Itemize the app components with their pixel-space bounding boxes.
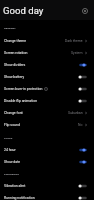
staticText: Good day bbox=[3, 5, 44, 16]
staticText: GENERAL bbox=[4, 27, 16, 30]
staticText: CLOCK bbox=[4, 137, 13, 140]
staticText: Show date bbox=[4, 160, 21, 164]
staticText: Dark theme bbox=[65, 39, 83, 43]
button[interactable]: 24 hour bbox=[0, 144, 94, 156]
staticText: Change theme bbox=[4, 39, 27, 43]
button[interactable]: On bbox=[78, 60, 88, 70]
button[interactable]: Off bbox=[78, 96, 88, 106]
button[interactable]: Change font bbox=[0, 107, 94, 119]
staticText: Show dividers bbox=[4, 63, 26, 67]
staticText: Suburban bbox=[68, 111, 83, 115]
button[interactable]: On bbox=[78, 145, 88, 155]
staticText: No bbox=[78, 123, 83, 127]
button[interactable]: Profile bbox=[79, 5, 90, 16]
button[interactable]: Off bbox=[78, 84, 88, 94]
button[interactable]: Off bbox=[78, 72, 88, 82]
button[interactable]: Screen rotation bbox=[0, 47, 94, 59]
staticText: 24 hour bbox=[4, 148, 16, 152]
staticText: Vibration alert bbox=[4, 184, 26, 188]
staticText: Running notification bbox=[4, 196, 35, 200]
button[interactable]: Change theme bbox=[0, 35, 94, 47]
button[interactable]: Off bbox=[78, 193, 88, 200]
button[interactable]: Disable flip animation bbox=[0, 95, 94, 107]
button[interactable]: Show battery bbox=[0, 71, 94, 83]
button[interactable]: Show dividers bbox=[0, 59, 94, 71]
staticText: POMODORO bbox=[4, 173, 20, 176]
button[interactable]: Flip sound bbox=[0, 119, 94, 131]
button[interactable]: Running notification bbox=[0, 192, 94, 200]
button[interactable]: Show date bbox=[0, 156, 94, 168]
button[interactable]: Vibration alert bbox=[0, 180, 94, 192]
staticText: Flip sound bbox=[4, 123, 20, 127]
button[interactable]: On bbox=[78, 157, 88, 167]
staticText: Change font bbox=[4, 111, 23, 115]
staticText: Disable flip animation bbox=[4, 99, 38, 103]
staticText: System bbox=[71, 51, 83, 55]
button[interactable]: Off bbox=[78, 181, 88, 191]
staticText: Screen burn-in protection bbox=[4, 87, 43, 91]
staticText: Show battery bbox=[4, 75, 25, 79]
staticText: Screen rotation bbox=[4, 51, 28, 55]
button[interactable]: Screen burn-in protection bbox=[0, 83, 94, 95]
